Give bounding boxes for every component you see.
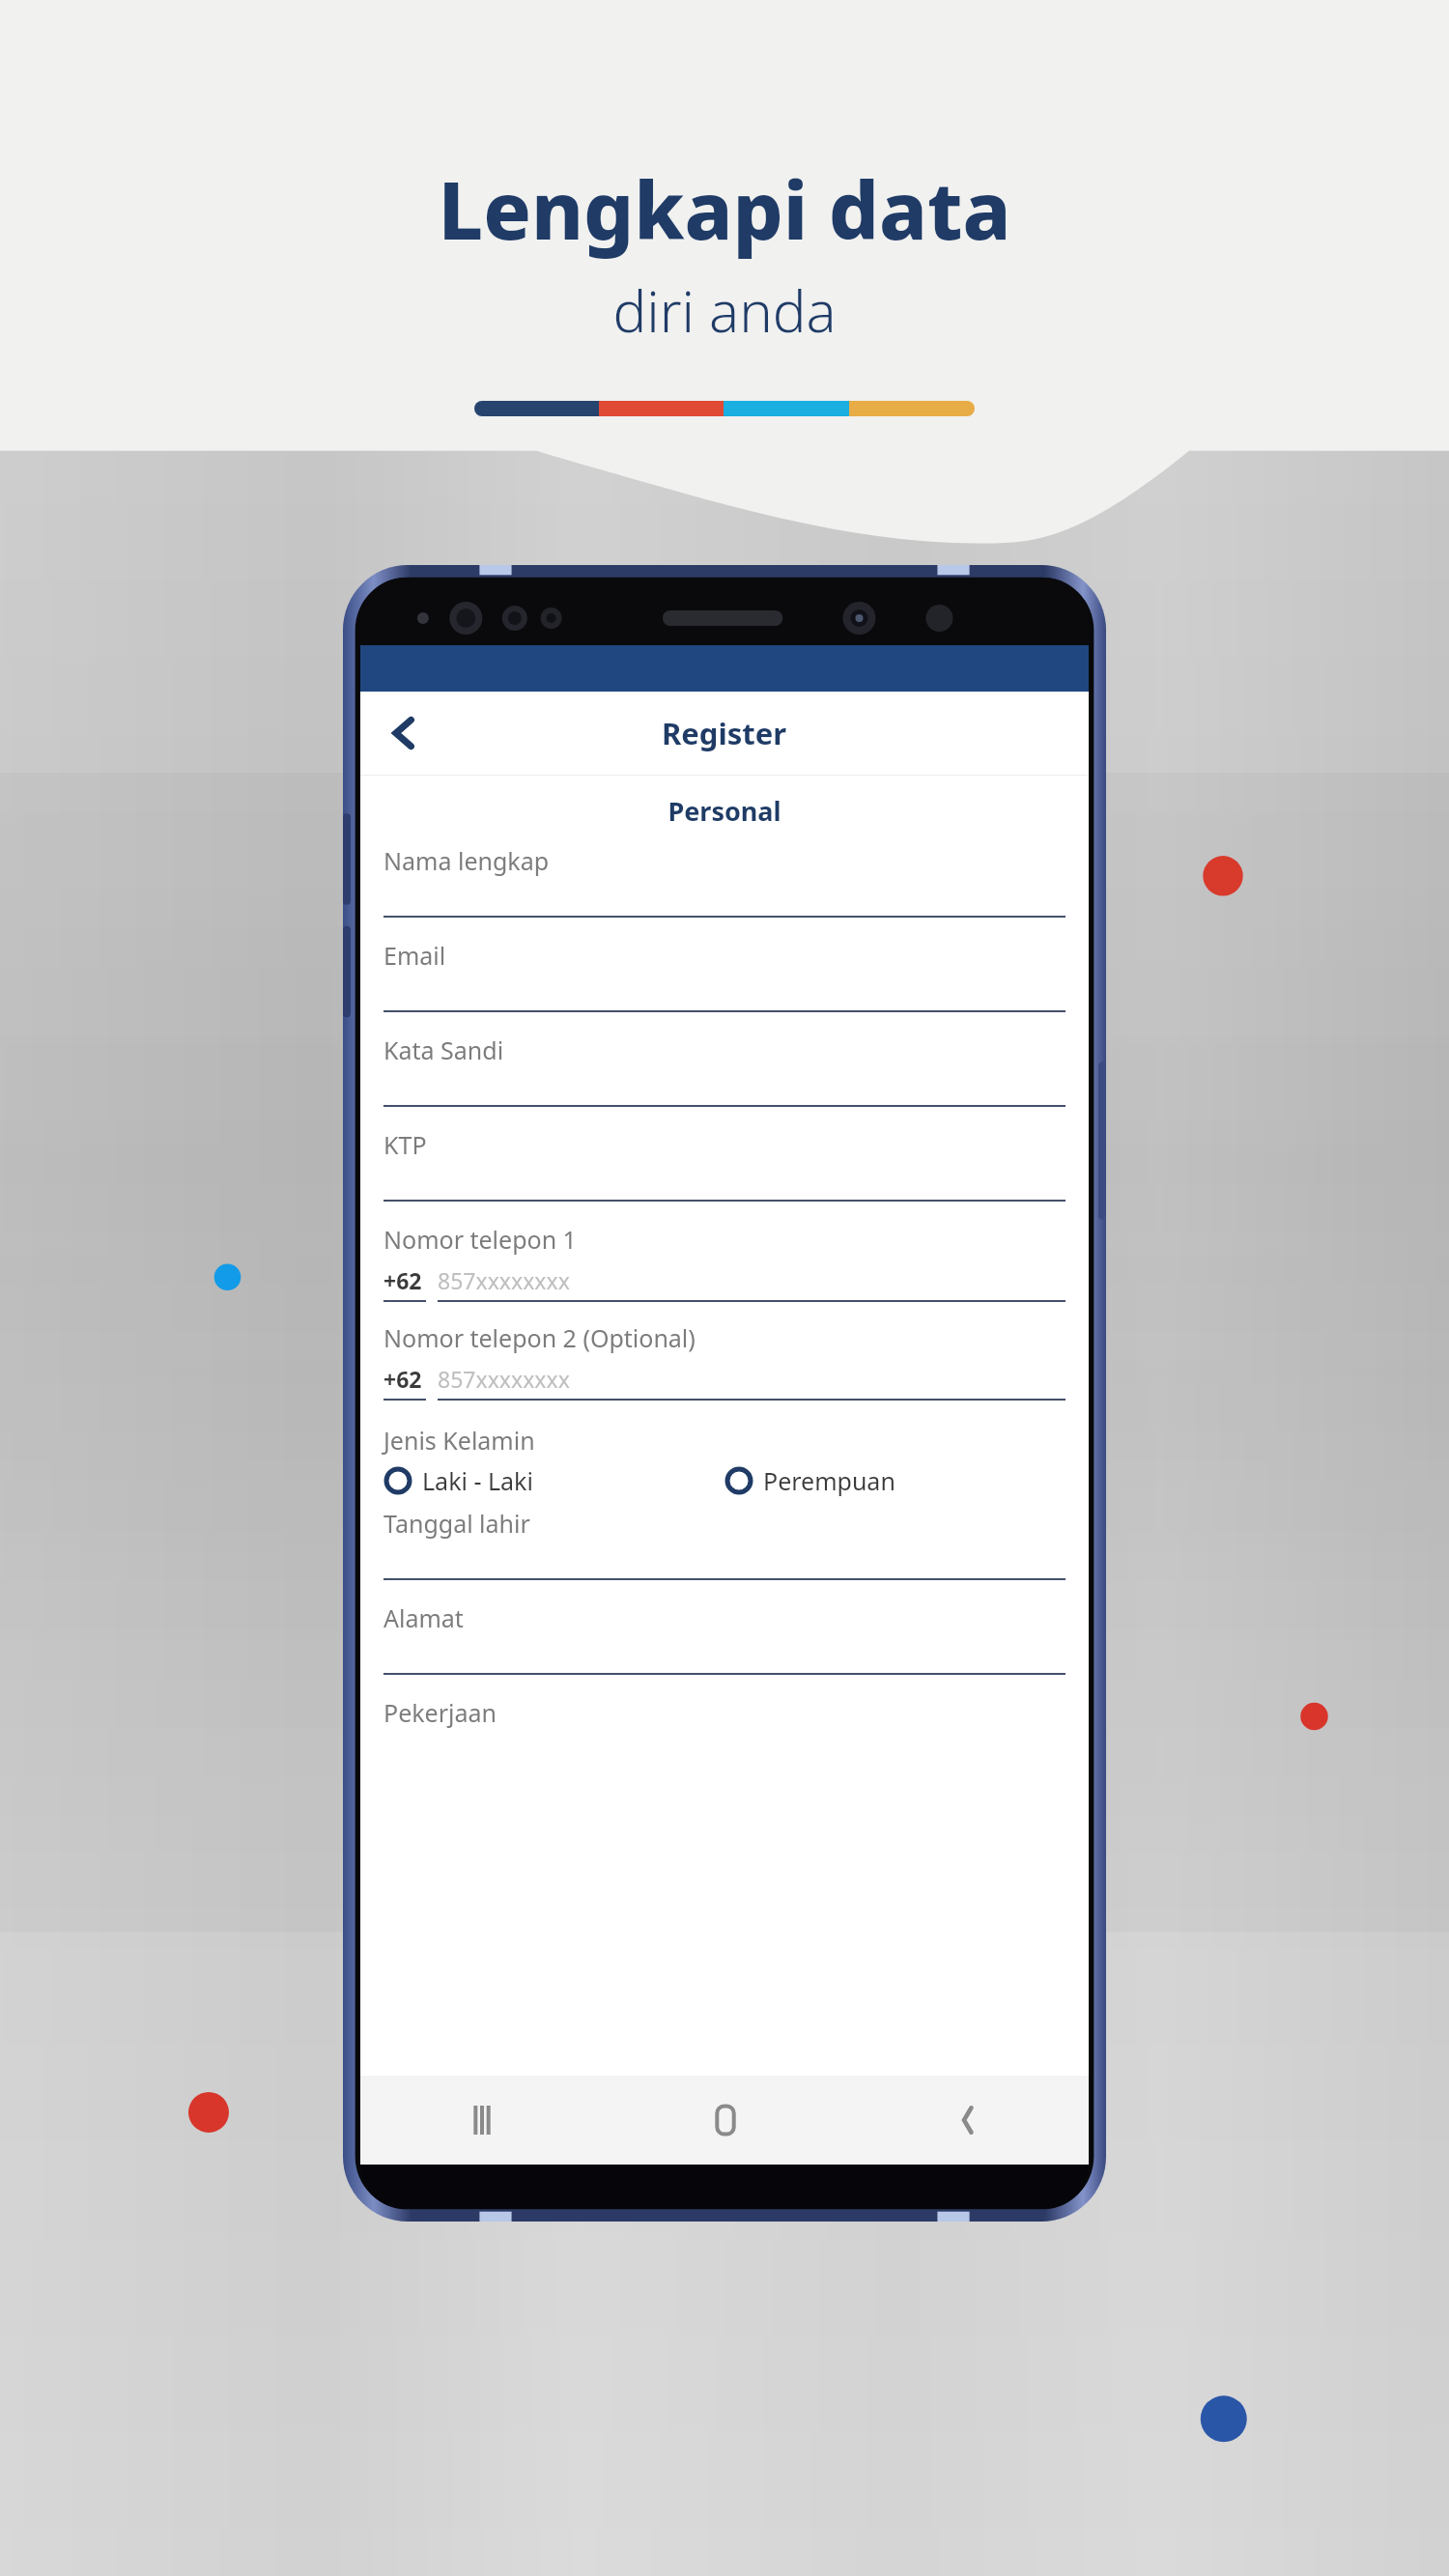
button[interactable]: Perempuan bbox=[724, 1464, 1065, 1497]
staticText: Email bbox=[384, 939, 446, 972]
staticText: Jenis Kelamin bbox=[384, 1424, 535, 1457]
staticText: Pekerjaan bbox=[384, 1696, 497, 1729]
staticText: diri anda bbox=[612, 272, 837, 349]
staticText: Tanggal lahir bbox=[384, 1507, 530, 1540]
staticText: 857xxxxxxxx bbox=[438, 1364, 570, 1394]
staticText: Laki - Laki bbox=[422, 1464, 533, 1497]
button[interactable]: Nomor telepon 2 (Optional) bbox=[384, 1321, 1065, 1420]
staticText: Lengkapi data bbox=[438, 155, 1011, 263]
button[interactable]: Nomor telepon 1 bbox=[384, 1223, 1065, 1321]
button[interactable]: Email bbox=[384, 939, 1065, 1033]
button[interactable]: Nama lengkap bbox=[384, 844, 1065, 939]
button[interactable]: Tanggal lahir bbox=[384, 1507, 1065, 1601]
button[interactable]: Back bbox=[376, 705, 432, 761]
button[interactable]: Laki - Laki bbox=[384, 1464, 724, 1497]
button[interactable]: Recents bbox=[360, 2076, 604, 2165]
staticText: +62 bbox=[384, 1364, 422, 1394]
staticText: +62 bbox=[384, 1265, 422, 1295]
staticText: 857xxxxxxxx bbox=[438, 1265, 570, 1295]
button[interactable]: KTP bbox=[384, 1128, 1065, 1223]
staticText: KTP bbox=[384, 1128, 427, 1161]
staticText: Kata Sandi bbox=[384, 1033, 504, 1066]
button[interactable]: Kata Sandi bbox=[384, 1033, 1065, 1128]
staticText: Nomor telepon 2 (Optional) bbox=[384, 1321, 696, 1354]
staticText: Personal bbox=[384, 793, 1065, 829]
staticText: Register bbox=[662, 713, 787, 753]
button[interactable]: Alamat bbox=[384, 1601, 1065, 1696]
button[interactable]: Home bbox=[604, 2076, 846, 2165]
staticText: Nama lengkap bbox=[384, 844, 550, 877]
staticText: Nomor telepon 1 bbox=[384, 1223, 577, 1256]
button[interactable]: Back bbox=[846, 2076, 1089, 2165]
staticText: Perempuan bbox=[763, 1464, 895, 1497]
staticText: Alamat bbox=[384, 1601, 464, 1634]
